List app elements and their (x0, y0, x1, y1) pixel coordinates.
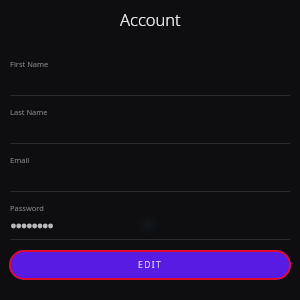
staticText: Password (10, 203, 44, 213)
staticText: Email (10, 155, 30, 165)
staticText: Last Name (10, 107, 48, 117)
button[interactable]: Password (0, 200, 300, 248)
staticText: First Name (10, 59, 49, 69)
button[interactable]: Last Name (0, 104, 300, 152)
button[interactable]: EDIT (9, 250, 291, 280)
staticText: EDIT (138, 259, 163, 271)
button[interactable]: Email (0, 152, 300, 200)
button[interactable]: First Name (0, 56, 300, 104)
staticText: Account (120, 8, 181, 30)
other: Hidden password (11, 221, 59, 231)
